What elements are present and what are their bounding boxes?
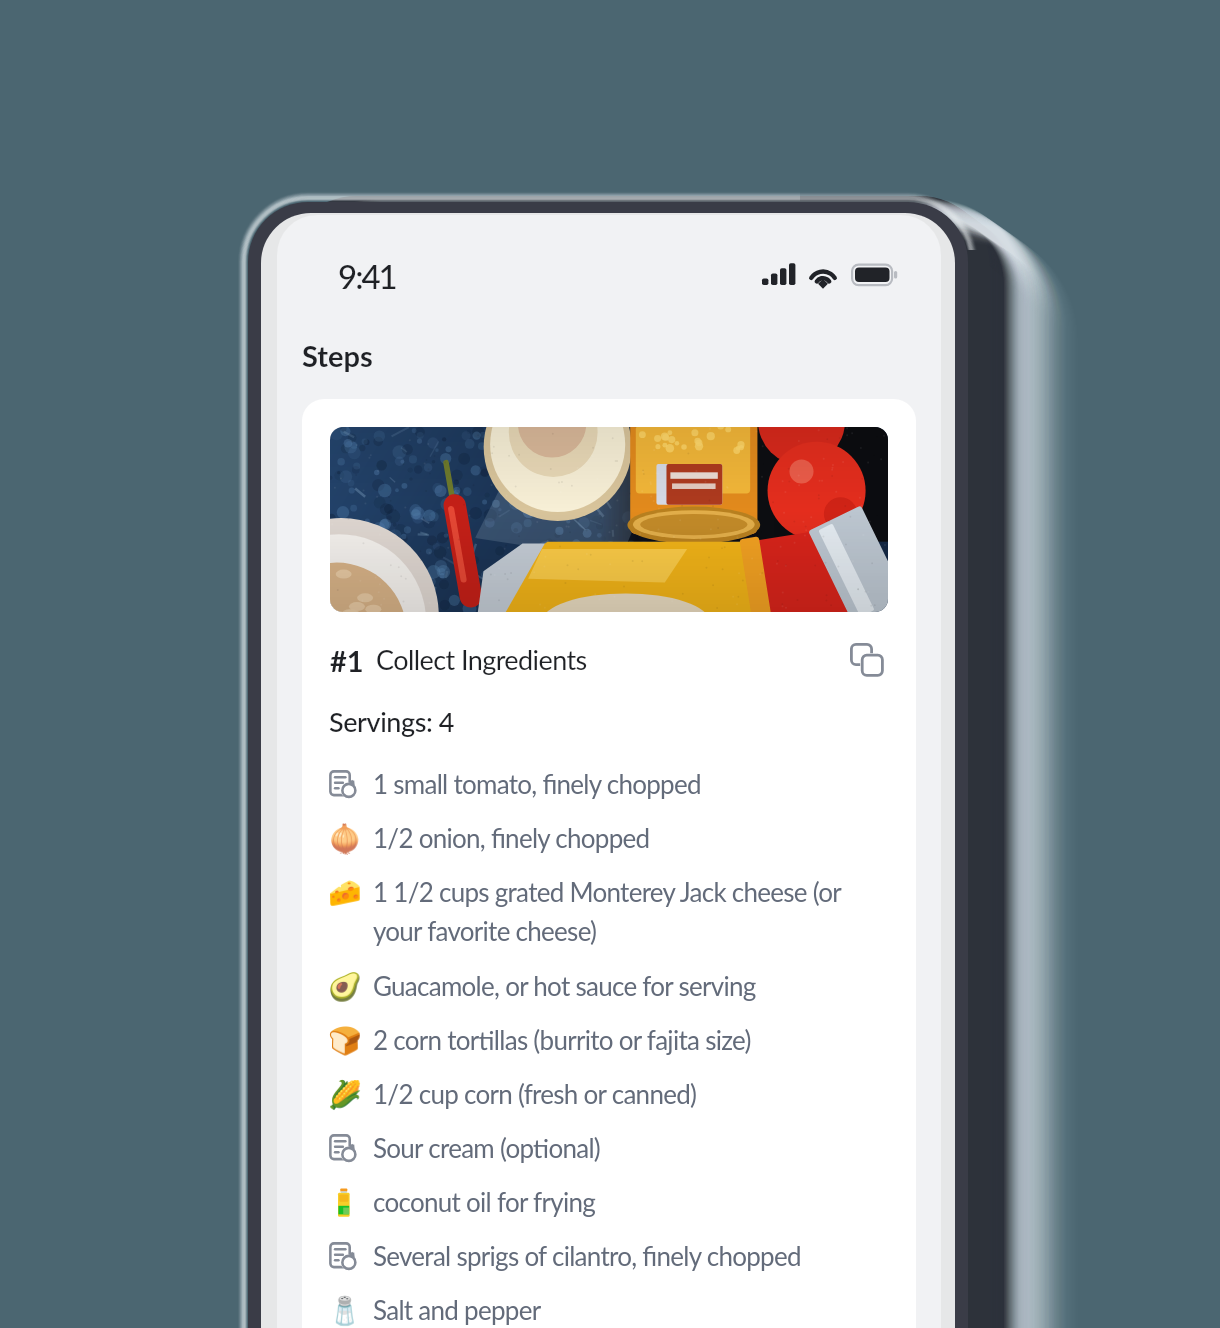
staticText: 1/2 cup corn (fresh or canned) — [373, 1078, 863, 1109]
button[interactable]: Duplicate step — [838, 631, 896, 689]
staticText: 🍞 — [328, 1025, 362, 1057]
staticText: Steps — [302, 338, 373, 373]
staticText: 🧅 — [328, 823, 362, 855]
staticText: 9:41 — [338, 256, 396, 296]
staticText: 🥑 — [328, 971, 362, 1003]
staticText: 1 1/2 cups grated Monterey Jack cheese (… — [373, 876, 863, 947]
staticText: Collect Ingredients — [376, 643, 587, 675]
staticText: Sour cream (optional) — [373, 1132, 863, 1163]
staticText: coconut oil for frying — [373, 1186, 863, 1217]
staticText: Guacamole, or hot sauce for serving — [373, 970, 863, 1001]
staticText: 2 corn tortillas (burrito or fajita size… — [373, 1024, 863, 1055]
staticText: Several sprigs of cilantro, finely chopp… — [373, 1240, 863, 1271]
staticText: 🧂 — [328, 1295, 362, 1327]
staticText: 🧀 — [328, 877, 362, 909]
staticText: 🌽 — [328, 1079, 362, 1111]
staticText: Salt and pepper — [373, 1294, 863, 1325]
staticText: 1/2 onion, finely chopped — [373, 822, 863, 853]
staticText: 1 small tomato, finely chopped — [373, 768, 863, 799]
staticText: Servings: 4 — [329, 705, 454, 737]
staticText: #1 — [330, 643, 364, 678]
